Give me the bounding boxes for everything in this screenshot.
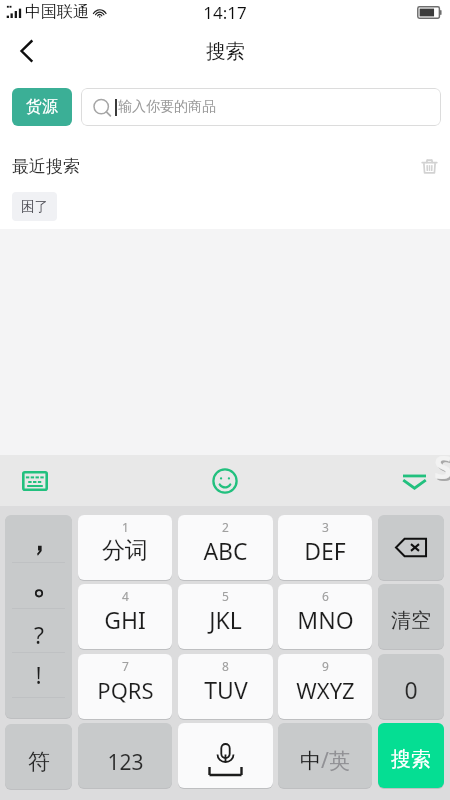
button[interactable] [5,515,72,563]
button[interactable]: 8 [178,654,273,719]
button[interactable]: 输入你要的商品 [81,88,441,126]
staticText: 14:17 [203,1,247,24]
button[interactable]: 0 [378,654,444,719]
button[interactable]: 4 [78,584,172,649]
staticText: ! [35,659,42,690]
button[interactable]: 6 [278,584,372,649]
staticText: 输入你要的商品 [118,98,216,116]
button[interactable]: 清空 [378,584,444,649]
staticText: 最近搜索 [12,156,80,177]
button[interactable]: 2 [178,515,273,580]
staticText: 货源 [26,97,58,117]
staticText: S [434,444,450,489]
staticText: 5 [222,588,229,604]
staticText: JKL [209,604,242,635]
button[interactable]: 货源 [12,88,72,126]
staticText: ? [34,619,44,650]
staticText: ABC [203,535,248,566]
button[interactable]: Backspace [378,515,444,580]
button[interactable]: 符 [5,724,72,789]
staticText: TUV [204,674,248,705]
button[interactable]: Clear history [412,149,446,183]
button[interactable]: 3 [278,515,372,580]
staticText: 中国联通 [25,2,89,22]
staticText: 搜索 [391,747,431,772]
button[interactable]: 9 [278,654,372,719]
staticText: 2 [222,519,229,535]
button[interactable]: 1 [78,515,172,580]
staticText: 分词 [102,536,148,565]
button[interactable]: ! [5,653,72,698]
button[interactable]: Hide keyboard [394,461,434,501]
button[interactable]: 中 [278,723,372,788]
staticText: 7 [122,658,129,674]
staticText: GHI [104,604,146,635]
button[interactable]: Keyboard layout [15,461,55,501]
staticText: S [436,446,450,491]
staticText: 搜索 [206,39,245,64]
staticText: 符 [28,748,50,776]
staticText: 0 [404,674,418,705]
button[interactable]: Emoji [204,460,246,502]
staticText: PQRS [97,675,154,705]
staticText: 清空 [391,608,431,633]
staticText: /英 [321,746,350,775]
staticText: 困了 [21,198,48,215]
button[interactable]: 困了 [12,192,57,221]
staticText: 1 [122,519,129,535]
button[interactable] [5,563,72,609]
staticText: 3 [322,519,329,535]
staticText: MNO [297,604,354,635]
button[interactable]: 123 [78,723,172,788]
staticText: DEF [304,535,346,566]
staticText: WXYZ [296,675,355,705]
button[interactable]: ? [5,609,72,653]
staticText: 8 [222,658,229,674]
staticText: 9 [322,658,329,674]
button[interactable]: Voice input [178,723,273,788]
button[interactable]: 5 [178,584,273,649]
staticText: 中 [300,748,321,774]
staticText: 4 [122,588,129,604]
button[interactable]: 搜索 [378,723,444,788]
staticText: 123 [107,748,144,777]
staticText: 6 [322,588,329,604]
button[interactable]: 7 [78,654,172,719]
button[interactable]: Back [4,29,48,73]
